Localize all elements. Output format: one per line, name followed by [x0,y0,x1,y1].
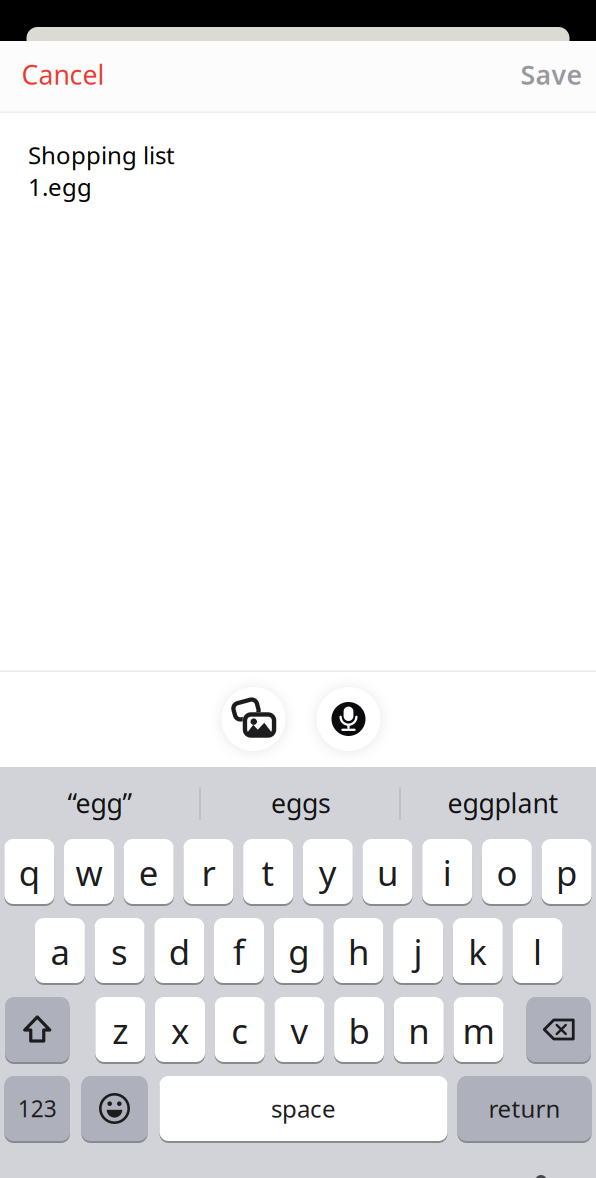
button[interactable]: g [274,917,324,984]
button[interactable]: u [362,838,412,905]
button[interactable]: eggplant [408,771,596,835]
button[interactable]: q [4,838,54,905]
staticText: Cancel [21,57,104,92]
button[interactable]: m [453,996,503,1063]
staticText: s [111,928,128,974]
button[interactable] [81,1075,147,1142]
button[interactable]: e [124,838,174,905]
button[interactable]: i [422,838,472,905]
staticText: x [171,1007,189,1053]
button[interactable]: j [393,917,443,984]
button[interactable] [526,996,591,1063]
staticText: k [468,928,487,974]
staticText: l [533,928,542,974]
staticText: p [556,849,577,895]
button[interactable]: t [243,838,293,905]
button[interactable]: b [334,996,384,1063]
staticText: b [349,1007,370,1053]
staticText: eggs [271,785,331,821]
staticText: e [139,849,159,895]
button[interactable]: v [274,996,324,1063]
staticText: h [348,928,369,974]
button[interactable]: c [215,996,265,1063]
button[interactable] [221,687,285,751]
button[interactable]: d [154,917,204,984]
button[interactable]: “egg” [5,771,195,835]
button[interactable] [316,687,380,751]
staticText: v [290,1007,308,1053]
button[interactable]: r [183,838,233,905]
staticText: Shopping list [28,139,175,171]
staticText: g [288,928,309,974]
staticText: 1.egg [28,171,92,203]
staticText: return [488,1093,560,1124]
staticText: “egg” [67,785,132,821]
button[interactable]: w [64,838,114,905]
button[interactable]: space [159,1075,447,1142]
staticText: o [496,849,517,895]
staticText: d [169,928,190,974]
button[interactable]: 123 [4,1075,70,1142]
button[interactable]: a [35,917,85,984]
staticText: u [377,849,398,895]
button[interactable]: h [333,917,383,984]
button[interactable]: o [482,838,532,905]
button[interactable] [5,996,69,1063]
button[interactable]: p [542,838,592,905]
staticText: n [408,1007,429,1053]
staticText: r [201,849,215,895]
button[interactable]: x [155,996,205,1063]
staticText: i [443,849,452,895]
staticText: Save [520,57,582,92]
button[interactable]: eggs [206,771,396,835]
button[interactable]: s [95,917,145,984]
staticText: f [233,928,245,974]
staticText: q [19,849,40,895]
staticText: c [231,1007,248,1053]
button[interactable]: y [303,838,353,905]
staticText: a [50,928,69,974]
staticText: 123 [18,1093,57,1123]
button[interactable]: l [512,917,562,984]
staticText: y [319,849,337,895]
button[interactable]: f [214,917,264,984]
staticText: eggplant [447,785,558,821]
button[interactable]: n [394,996,444,1063]
staticText: z [112,1007,128,1053]
staticText: space [271,1093,336,1124]
button[interactable]: z [95,996,145,1063]
button[interactable]: Cancel [21,57,104,92]
button[interactable]: k [453,917,503,984]
staticText: t [262,849,275,895]
button[interactable]: Save [520,57,582,92]
staticText: w [75,849,102,895]
button[interactable]: return [457,1075,591,1142]
staticText: j [414,928,423,974]
staticText: m [462,1007,494,1053]
